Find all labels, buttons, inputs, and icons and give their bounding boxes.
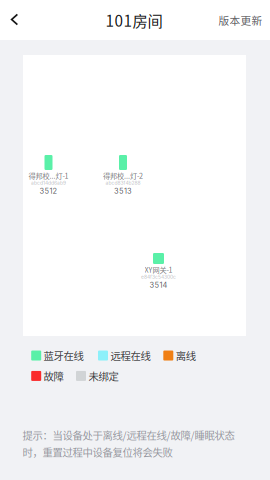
button[interactable]: 得邦校...灯-1 bbox=[13, 155, 83, 197]
staticText: 故障 bbox=[44, 368, 64, 383]
staticText: 3514 bbox=[149, 280, 167, 289]
button[interactable]: Back bbox=[0, 4, 29, 34]
staticText: abcd83f4b288 bbox=[105, 180, 140, 186]
staticText: 得邦校...灯-1 bbox=[28, 170, 68, 181]
staticText: 3513 bbox=[114, 186, 132, 195]
staticText: e84f3c54300c bbox=[141, 274, 176, 280]
button[interactable]: 版本更新 bbox=[212, 4, 268, 36]
staticText: 提示：当设备处于离线/远程在线/故障/睡眠状态时，重置过程中设备复位将会失败 bbox=[22, 427, 234, 460]
staticText: 未绑定 bbox=[88, 368, 118, 383]
button[interactable]: XY网关-1 bbox=[123, 249, 193, 291]
staticText: 得邦校...灯-2 bbox=[103, 170, 143, 181]
staticText: 离线 bbox=[176, 348, 196, 363]
staticText: 101房间 bbox=[105, 9, 162, 31]
staticText: 版本更新 bbox=[218, 12, 262, 28]
staticText: XY网关-1 bbox=[144, 264, 172, 275]
staticText: 3512 bbox=[39, 186, 57, 195]
staticText: 远程在线 bbox=[110, 348, 150, 363]
staticText: abcd14dd6ab9 bbox=[31, 180, 66, 186]
button[interactable]: 得邦校...灯-2 bbox=[88, 155, 158, 197]
staticText: 蓝牙在线 bbox=[44, 348, 84, 363]
